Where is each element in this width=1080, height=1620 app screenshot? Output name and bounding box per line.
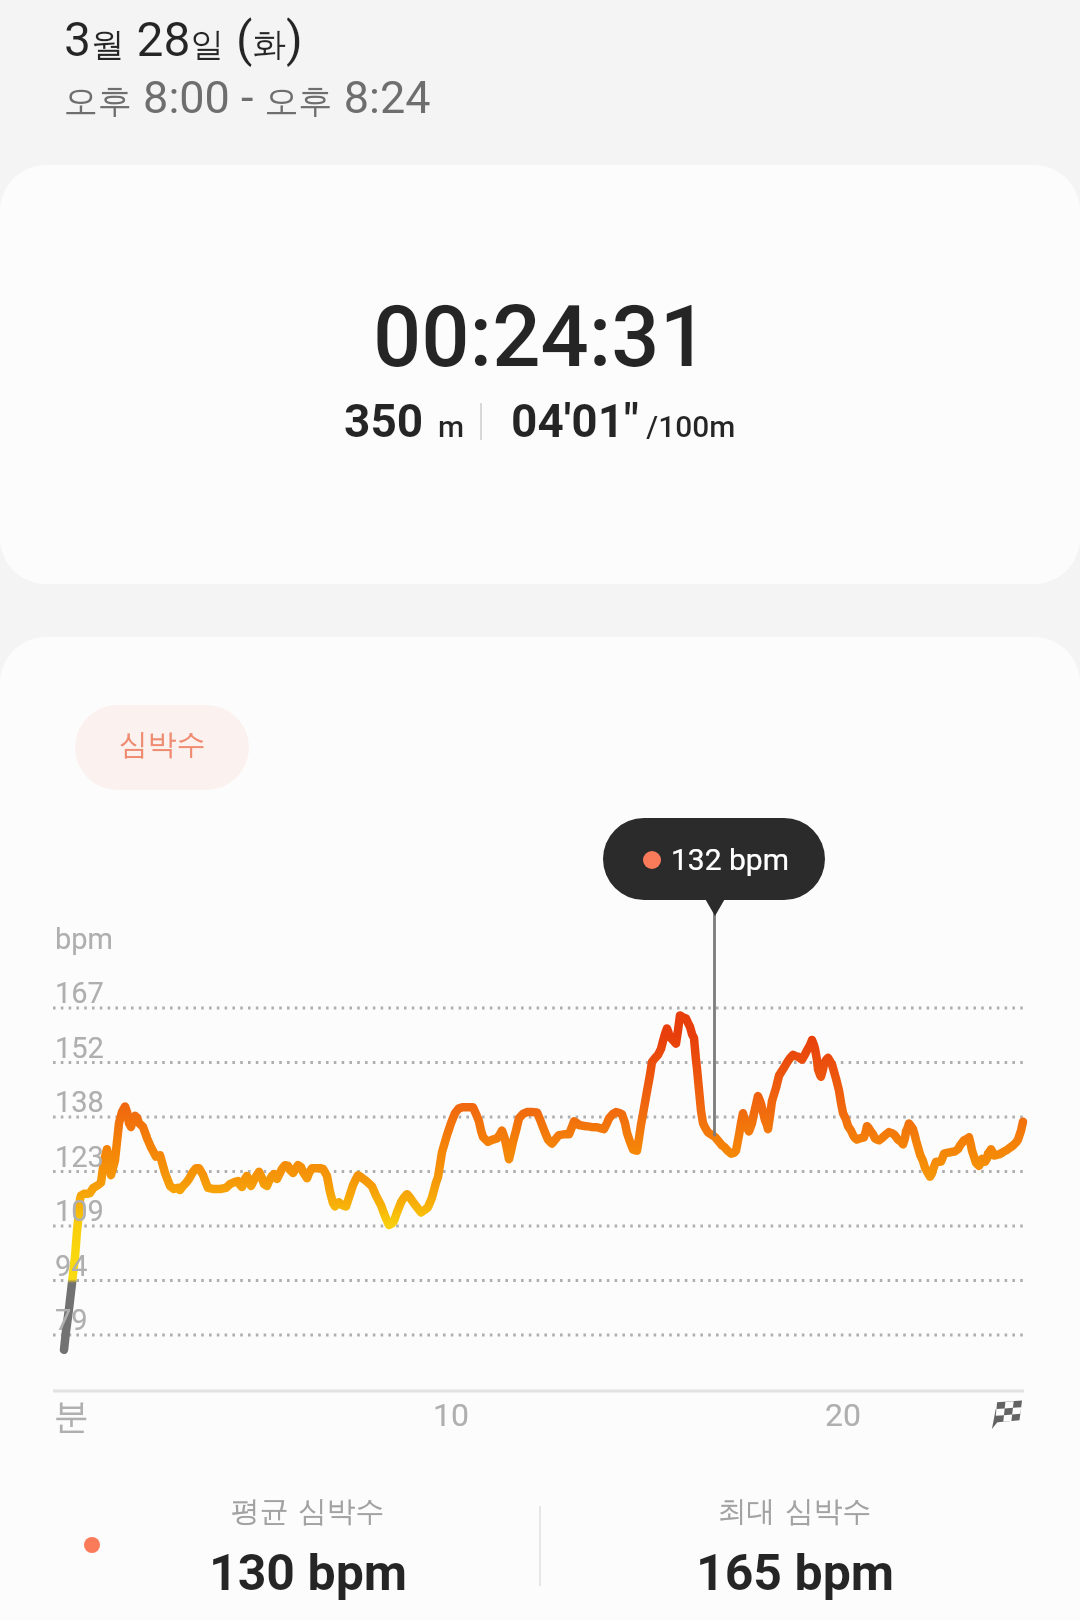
staticText: 10: [433, 1396, 469, 1434]
staticText: 분: [54, 1394, 89, 1438]
staticText: 152: [55, 1031, 104, 1065]
staticText: 130 bpm: [209, 1544, 408, 1603]
staticText: 20: [825, 1396, 861, 1434]
staticText: 79: [55, 1303, 88, 1337]
staticText: 평균 심박수: [231, 1487, 385, 1530]
staticText: 오후 8:00 - 오후 8:24: [64, 71, 431, 124]
staticText: 3월 28일 (화): [64, 11, 303, 67]
staticText: 94: [55, 1249, 88, 1283]
button[interactable]: 132 bpm: [603, 818, 825, 900]
staticText: 최대 심박수: [718, 1487, 872, 1530]
button[interactable]: 심박수: [75, 705, 249, 790]
staticText: 165 bpm: [696, 1544, 895, 1603]
staticText: 123: [55, 1140, 104, 1174]
button[interactable]: 평균 심박수: [38, 1487, 578, 1612]
staticText: 167: [55, 976, 104, 1010]
staticText: 04'01" /100m: [511, 394, 736, 448]
button[interactable]: Heart rate graph: [40, 900, 1040, 1400]
staticText: 138: [55, 1085, 104, 1119]
button[interactable]: 00:24:31: [0, 165, 1080, 584]
button[interactable]: 최대 심박수: [525, 1487, 1065, 1612]
staticText: 109: [55, 1194, 104, 1228]
staticText: 심박수: [119, 726, 206, 762]
staticText: 00:24:31: [373, 287, 708, 387]
staticText: 350 m: [344, 394, 465, 448]
other: Finish: [991, 1400, 1023, 1429]
staticText: 132 bpm: [671, 842, 790, 877]
staticText: bpm: [55, 922, 113, 956]
